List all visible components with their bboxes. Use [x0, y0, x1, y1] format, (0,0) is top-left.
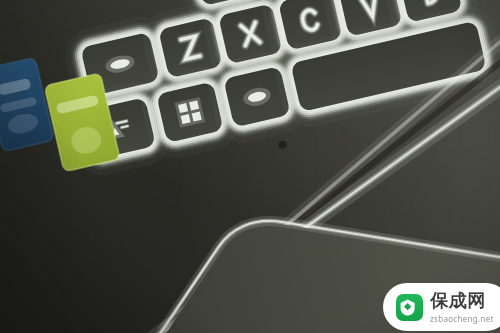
button[interactable]: Laptop keyboard photo	[0, 0, 500, 333]
staticText: zsbaocheng.net	[430, 313, 494, 324]
staticText: 保成网	[430, 290, 486, 313]
button[interactable]: zsbaocheng.net watermark	[383, 283, 500, 331]
